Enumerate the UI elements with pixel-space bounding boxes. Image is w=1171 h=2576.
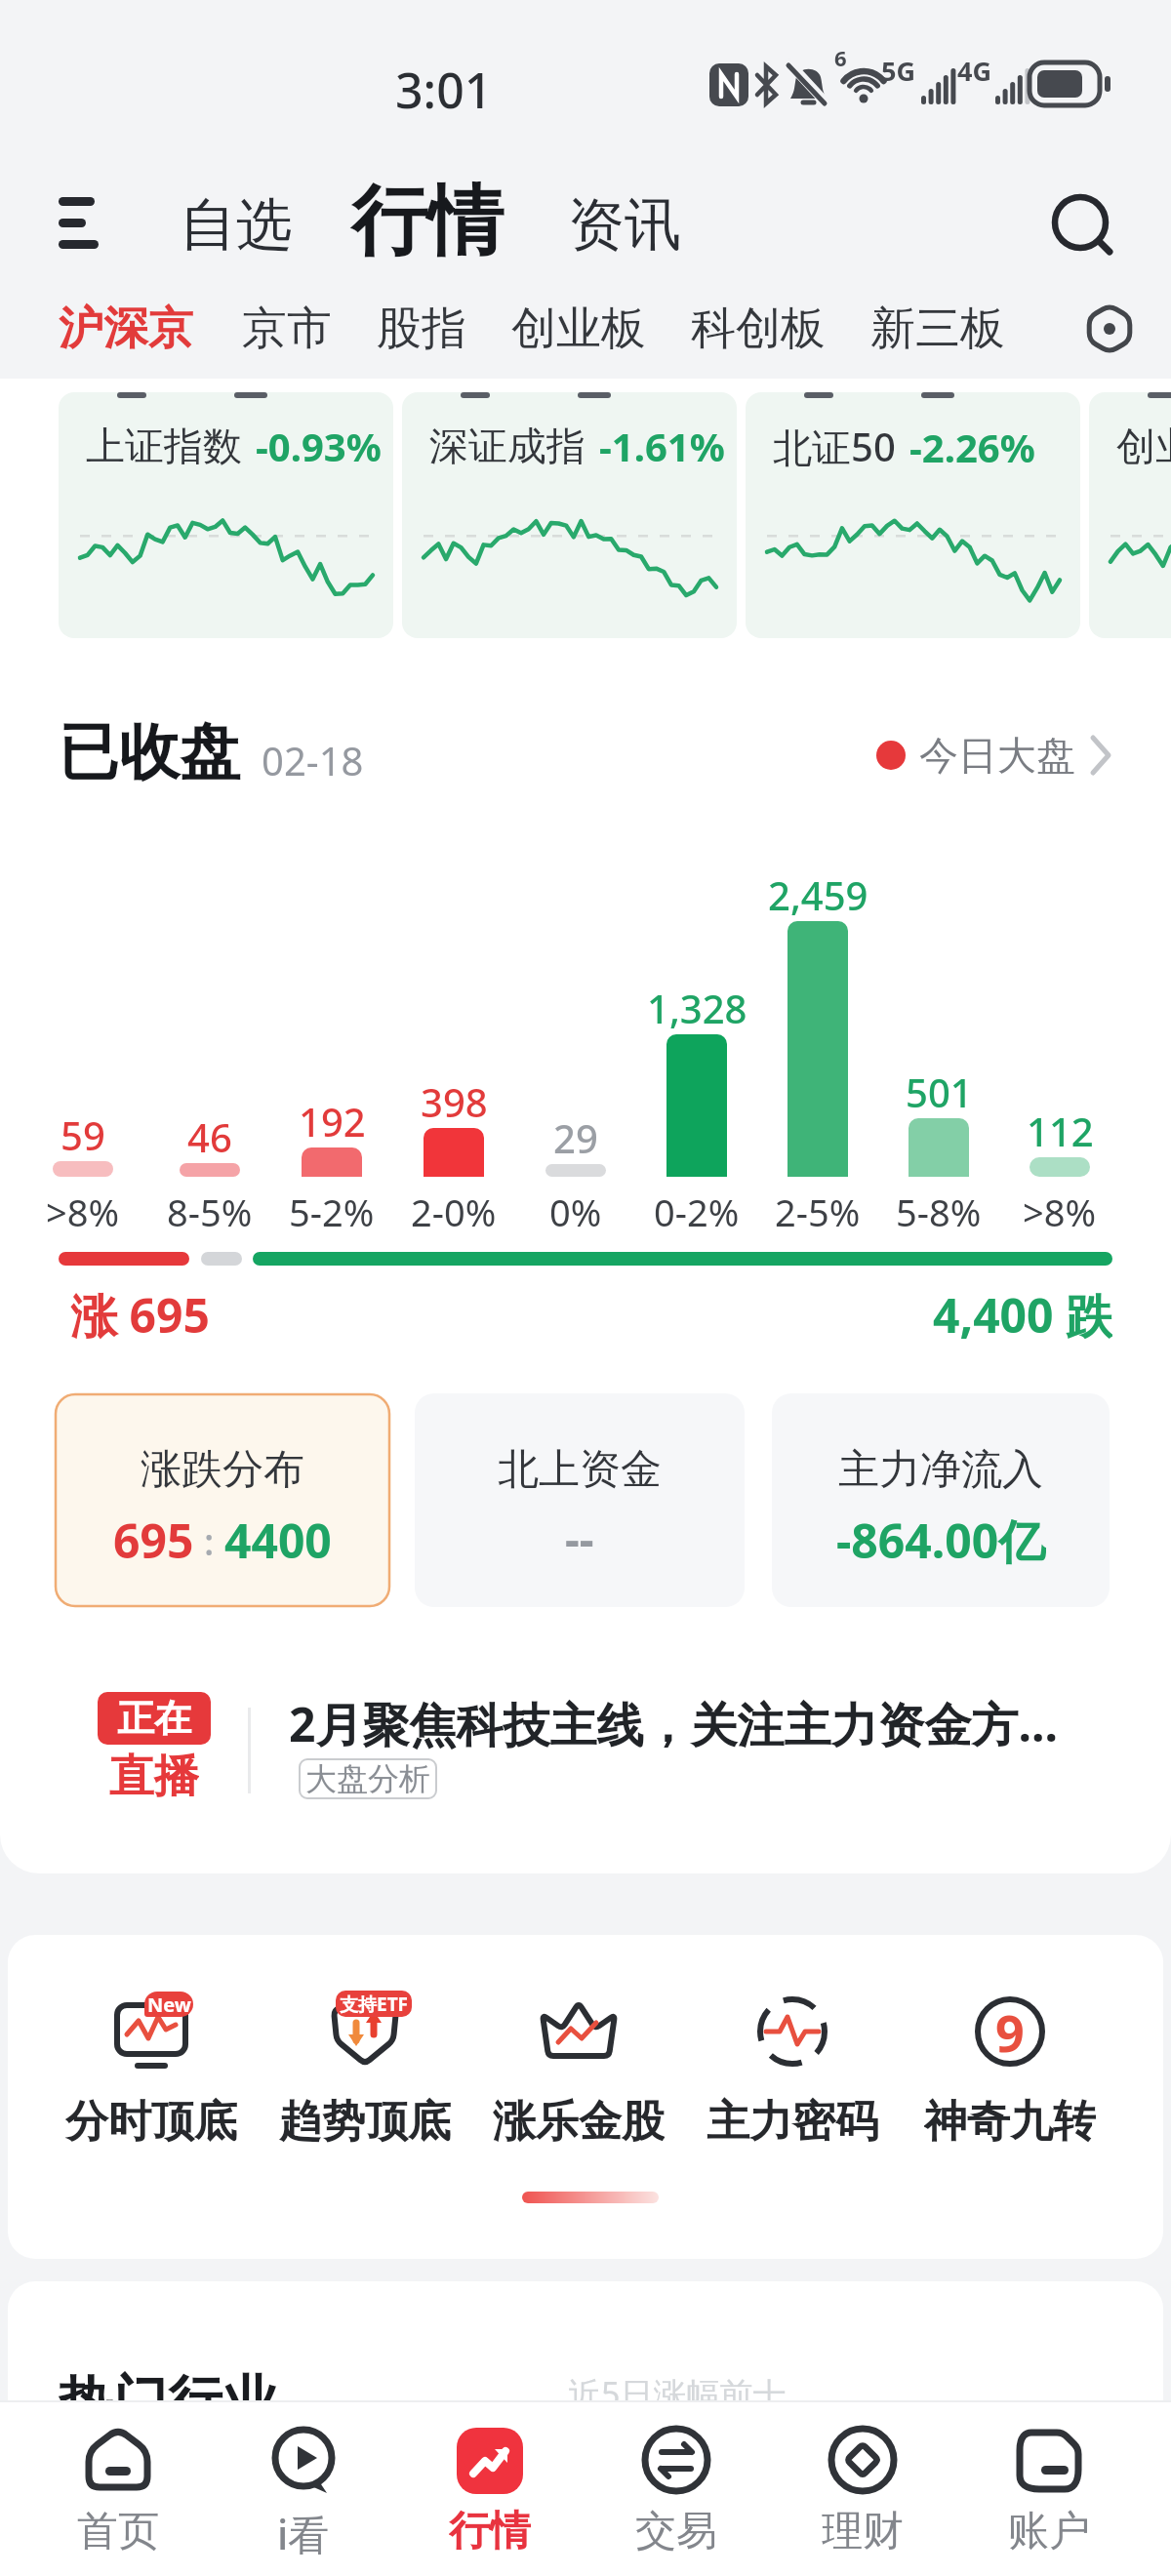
staticText: -2.26% — [909, 421, 1035, 473]
button[interactable] — [772, 2400, 953, 2576]
staticText: 4,400 跌 — [933, 1283, 1112, 1342]
button[interactable]: 沪深京 — [59, 298, 193, 360]
staticText: 热门行业 — [59, 2367, 277, 2435]
staticText: 02-18 — [262, 734, 364, 783]
staticText: 创业板 — [511, 301, 646, 357]
staticText: 6 — [834, 43, 847, 68]
staticText: 主力净流入 — [838, 1444, 1043, 1495]
button[interactable] — [912, 1961, 1108, 2156]
staticText: 29 — [553, 1111, 598, 1160]
staticText: -0.93% — [256, 420, 382, 472]
button[interactable]: 北证50 — [746, 392, 1080, 638]
staticText: 大盘分析 — [305, 1759, 430, 1798]
staticText: 3:01 — [395, 57, 493, 117]
staticText: 2月聚焦科技主线，关注主力资金方... — [289, 1692, 1058, 1751]
button[interactable]: 自选 — [168, 188, 304, 261]
staticText: 自选 — [180, 189, 293, 261]
staticText: 8-5% — [167, 1187, 253, 1235]
button[interactable]: 股指 — [377, 298, 466, 360]
button[interactable]: 深证成指 — [402, 392, 737, 638]
staticText: 京市 — [242, 301, 332, 357]
button[interactable]: 涨跌分布 — [55, 1393, 390, 1607]
button[interactable]: 京市 — [242, 298, 332, 360]
staticText: -864.00亿 — [836, 1509, 1046, 1567]
staticText: 科创板 — [691, 301, 826, 357]
staticText: 695 — [113, 1509, 194, 1572]
button[interactable] — [27, 2400, 209, 2576]
staticText: 理财 — [822, 2506, 904, 2555]
button[interactable]: 新三板 — [870, 298, 1005, 360]
button[interactable] — [59, 195, 107, 254]
staticText: >8% — [1023, 1187, 1097, 1235]
staticText: 5-8% — [896, 1187, 982, 1235]
button[interactable]: 行情 — [343, 174, 511, 269]
staticText: 2-5% — [775, 1187, 861, 1235]
staticText: 4400 — [224, 1509, 332, 1572]
button[interactable]: 科创板 — [691, 298, 826, 360]
staticText: 2-0% — [411, 1187, 497, 1235]
staticText: 46 — [187, 1110, 232, 1159]
staticText: 近5日涨幅前十 — [568, 2371, 787, 2410]
staticText: 涨乐金股 — [493, 2095, 665, 2146]
button[interactable]: 北上资金 — [415, 1393, 745, 1607]
staticText: 沪深京 — [59, 301, 193, 357]
staticText: 分时顶底 — [65, 2095, 237, 2146]
staticText: 2,459 — [768, 868, 868, 917]
staticText: 1,328 — [647, 982, 747, 1030]
button[interactable] — [1080, 300, 1139, 358]
staticText: 已收盘 — [59, 714, 240, 790]
button[interactable] — [481, 1961, 676, 2156]
staticText: 北上资金 — [498, 1444, 662, 1495]
staticText: 创业板指 — [1116, 422, 1171, 470]
staticText: 支持ETF — [340, 1992, 409, 2017]
button[interactable] — [54, 1961, 249, 2156]
button[interactable] — [585, 2400, 767, 2576]
button[interactable] — [399, 2400, 581, 2576]
button[interactable] — [267, 1961, 463, 2156]
staticText: 资讯 — [568, 189, 681, 261]
staticText: 北证50 — [773, 420, 896, 473]
staticText: >8% — [46, 1187, 120, 1235]
staticText: 首页 — [77, 2506, 159, 2555]
staticText: 新三板 — [870, 301, 1005, 357]
staticText: 行情 — [449, 2506, 531, 2555]
staticText: 涨 695 — [70, 1283, 210, 1342]
staticText: 398 — [421, 1075, 488, 1124]
button[interactable]: 创业板 — [511, 298, 646, 360]
button[interactable]: 创业板指 — [1089, 392, 1171, 638]
button[interactable]: 上证指数 — [59, 392, 393, 638]
staticText: 59 — [61, 1108, 105, 1157]
staticText: 0% — [549, 1187, 602, 1235]
staticText: 正在 — [117, 1695, 191, 1742]
staticText: -1.61% — [599, 420, 725, 472]
staticText: 主力密码 — [707, 2095, 878, 2146]
staticText: 神奇九转 — [924, 2095, 1096, 2146]
staticText: 涨跌分布 — [141, 1444, 304, 1495]
staticText: 深证成指 — [429, 422, 585, 470]
staticText: 192 — [299, 1095, 366, 1144]
button[interactable] — [695, 1961, 890, 2156]
staticText: 股指 — [377, 301, 466, 357]
staticText: 4G — [957, 53, 991, 88]
button[interactable] — [59, 1669, 1112, 1834]
button[interactable]: 资讯 — [556, 188, 693, 261]
staticText: -- — [565, 1509, 594, 1567]
staticText: 9 — [995, 1997, 1025, 2067]
staticText: 账户 — [1008, 2506, 1090, 2555]
staticText: i看 — [277, 2506, 330, 2555]
staticText: 501 — [906, 1066, 973, 1114]
button[interactable]: 主力净流入 — [772, 1393, 1110, 1607]
staticText: New — [147, 1992, 191, 2017]
button[interactable] — [958, 2400, 1140, 2576]
button[interactable]: 今日大盘 — [876, 728, 1085, 783]
staticText: 今日大盘 — [919, 731, 1075, 780]
staticText: 0-2% — [654, 1187, 740, 1235]
staticText: 5-2% — [289, 1187, 375, 1235]
staticText: 行情 — [351, 174, 504, 269]
button[interactable] — [1050, 191, 1118, 260]
staticText: 5G — [881, 53, 915, 88]
button[interactable] — [213, 2400, 394, 2576]
staticText: 趋势顶底 — [279, 2095, 451, 2146]
staticText: 交易 — [635, 2506, 717, 2555]
staticText: : — [194, 1515, 224, 1566]
